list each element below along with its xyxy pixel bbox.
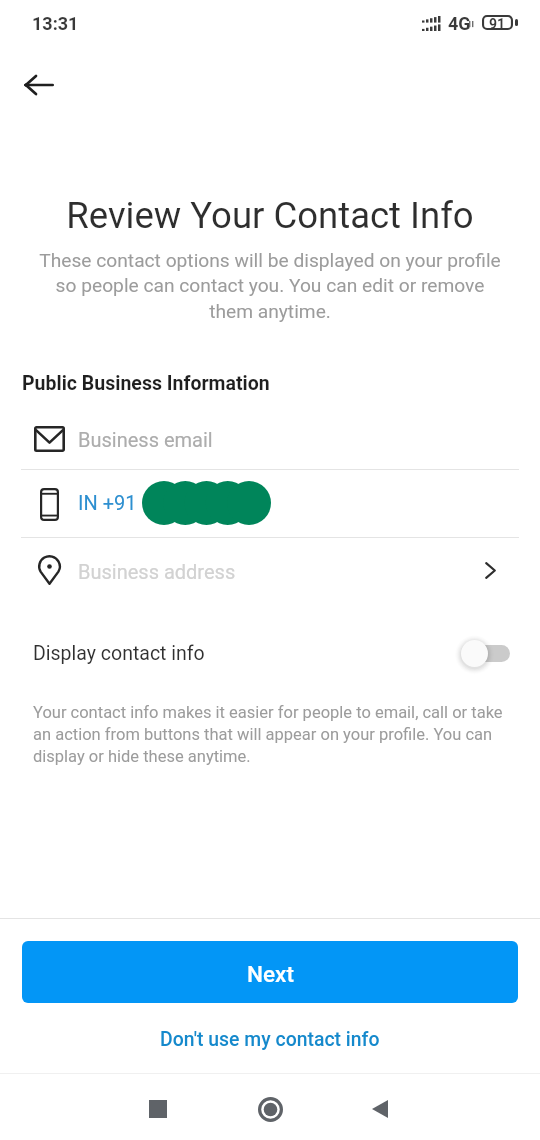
- staticText: Don't use my contact info: [160, 1028, 380, 1051]
- staticText: Your contact info makes it easier for pe…: [33, 703, 511, 766]
- staticText: Review Your Contact Info: [0, 194, 540, 237]
- button[interactable]: Don't use my contact info: [0, 1022, 540, 1078]
- button[interactable]: Home: [225, 1084, 315, 1140]
- button[interactable]: Back: [335, 1084, 425, 1140]
- button[interactable]: Recents: [113, 1084, 203, 1140]
- button[interactable]: Business address: [0, 538, 540, 600]
- button[interactable]: Next: [22, 941, 518, 1003]
- button[interactable]: Back: [8, 54, 70, 116]
- staticText: These contact options will be displayed …: [33, 249, 507, 323]
- button[interactable]: Business email: [0, 410, 540, 469]
- staticText: Next: [247, 961, 294, 987]
- staticText: Public Business Information: [22, 372, 270, 395]
- staticText: Business address: [78, 560, 236, 583]
- staticText: 13:31: [32, 13, 79, 34]
- staticText: Business email: [78, 428, 213, 451]
- staticText: 91: [489, 16, 506, 32]
- staticText: 4G: [448, 13, 471, 34]
- button[interactable]: IN +91: [0, 470, 540, 537]
- staticText: IN +91: [78, 491, 137, 514]
- button[interactable]: Display contact info: [0, 628, 540, 678]
- staticText: Display contact info: [33, 642, 205, 665]
